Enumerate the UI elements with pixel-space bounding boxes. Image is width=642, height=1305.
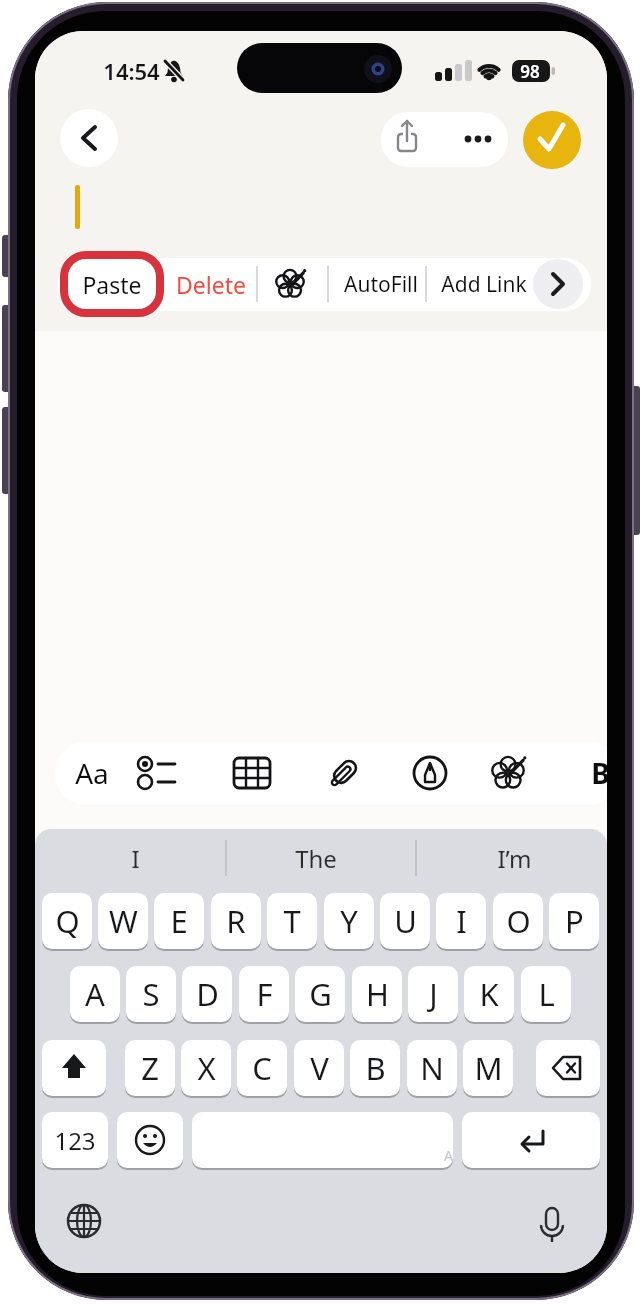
- button[interactable]: K: [464, 966, 514, 1022]
- staticText: T: [283, 900, 301, 942]
- button[interactable]: B: [350, 1040, 400, 1096]
- button[interactable]: Aa: [35, 743, 202, 803]
- button[interactable]: 123: [42, 1112, 108, 1168]
- staticText: H: [366, 973, 389, 1015]
- button[interactable]: [406, 749, 454, 797]
- staticText: G: [309, 973, 332, 1015]
- button[interactable]: [462, 1112, 600, 1168]
- staticText: I: [456, 900, 467, 942]
- button[interactable]: M: [463, 1040, 513, 1096]
- button[interactable]: [133, 749, 181, 797]
- button[interactable]: A: [70, 966, 120, 1022]
- staticText: 14:54: [103, 56, 160, 86]
- staticText: W: [109, 900, 138, 942]
- staticText: L: [538, 973, 555, 1015]
- button[interactable]: V: [294, 1040, 344, 1096]
- staticText: Y: [340, 900, 358, 942]
- button[interactable]: [528, 1197, 576, 1245]
- button[interactable]: Delete: [101, 254, 321, 314]
- button[interactable]: R: [211, 893, 261, 949]
- button[interactable]: Z: [125, 1040, 175, 1096]
- button[interactable]: X: [181, 1040, 231, 1096]
- staticText: C: [252, 1047, 272, 1089]
- button[interactable]: [533, 259, 583, 309]
- staticText: Paste: [82, 269, 142, 300]
- staticText: Aa: [75, 754, 109, 792]
- staticText: I’m: [497, 842, 532, 875]
- button[interactable]: [523, 111, 581, 169]
- button[interactable]: [381, 112, 508, 167]
- button[interactable]: I’m: [439, 828, 589, 888]
- staticText: O: [506, 900, 531, 942]
- staticText: U: [394, 900, 417, 942]
- button[interactable]: I: [75, 828, 195, 888]
- button[interactable]: Paste: [35, 254, 222, 314]
- button[interactable]: L: [521, 966, 571, 1022]
- button[interactable]: [60, 109, 118, 167]
- staticText: F: [256, 973, 273, 1015]
- button[interactable]: AutoFill: [271, 254, 491, 314]
- staticText: K: [479, 973, 499, 1015]
- button[interactable]: [536, 1040, 600, 1096]
- button[interactable]: S: [126, 966, 176, 1022]
- staticText: J: [429, 973, 438, 1015]
- staticText: R: [226, 900, 246, 942]
- button[interactable]: [484, 749, 532, 797]
- button[interactable]: [42, 1040, 106, 1096]
- button[interactable]: E: [154, 893, 204, 949]
- button[interactable]: C: [237, 1040, 287, 1096]
- button[interactable]: The: [241, 828, 391, 888]
- button[interactable]: W: [98, 893, 148, 949]
- button[interactable]: N: [407, 1040, 457, 1096]
- staticText: AutoFill: [344, 270, 418, 299]
- button[interactable]: [228, 749, 276, 797]
- button[interactable]: P: [549, 893, 599, 949]
- staticText: I: [131, 842, 140, 875]
- button[interactable]: B: [490, 743, 607, 803]
- button[interactable]: J: [408, 966, 458, 1022]
- staticText: Add Link: [441, 270, 527, 299]
- staticText: A: [85, 973, 105, 1015]
- staticText: Delete: [176, 269, 246, 300]
- button[interactable]: D: [182, 966, 232, 1022]
- button[interactable]: I: [436, 893, 486, 949]
- button[interactable]: [117, 1112, 183, 1168]
- button[interactable]: G: [295, 966, 345, 1022]
- staticText: Q: [55, 900, 80, 942]
- staticText: V: [310, 1047, 329, 1089]
- staticText: M: [474, 1047, 503, 1089]
- staticText: A: [444, 1146, 453, 1165]
- staticText: B: [591, 754, 607, 792]
- button[interactable]: O: [493, 893, 543, 949]
- staticText: 123: [54, 1124, 96, 1157]
- button[interactable]: [320, 749, 368, 797]
- button[interactable]: [192, 1112, 453, 1168]
- button[interactable]: Add Link: [374, 254, 594, 314]
- staticText: D: [196, 973, 219, 1015]
- button[interactable]: H: [352, 966, 402, 1022]
- button[interactable]: Y: [324, 893, 374, 949]
- staticText: P: [565, 900, 584, 942]
- staticText: Z: [141, 1047, 159, 1089]
- button[interactable]: T: [267, 893, 317, 949]
- staticText: E: [170, 900, 188, 942]
- staticText: The: [295, 842, 337, 875]
- button[interactable]: F: [239, 966, 289, 1022]
- button[interactable]: Q: [42, 893, 92, 949]
- staticText: 98: [520, 60, 540, 83]
- staticText: X: [197, 1047, 216, 1089]
- button[interactable]: U: [380, 893, 430, 949]
- button[interactable]: [60, 1197, 108, 1245]
- staticText: B: [365, 1047, 386, 1089]
- staticText: S: [142, 973, 160, 1015]
- staticText: N: [420, 1047, 444, 1089]
